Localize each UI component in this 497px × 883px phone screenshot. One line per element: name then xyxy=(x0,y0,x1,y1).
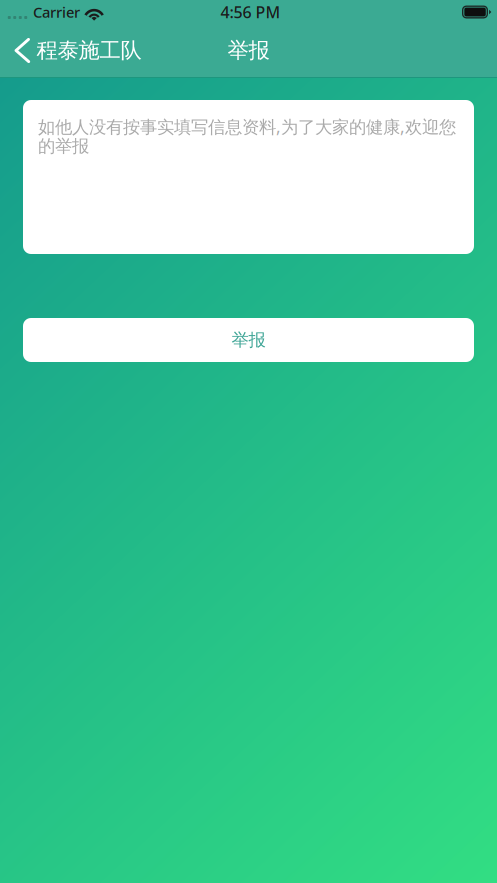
staticText: 程泰施工队 xyxy=(36,37,141,64)
button[interactable]: 举报 xyxy=(23,318,474,362)
staticText: 如他人没有按事实填写信息资料,为了大家的健康,欢迎您的举报 xyxy=(38,115,456,157)
staticText: 4:56 PM xyxy=(220,1,280,23)
staticText: 举报 xyxy=(231,329,265,351)
button[interactable]: 程泰施工队 xyxy=(0,24,153,77)
staticText: 举报 xyxy=(227,37,269,64)
staticText: Carrier xyxy=(33,2,80,22)
